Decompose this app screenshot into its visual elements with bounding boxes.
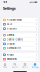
button[interactable]: Settings bbox=[30, 61, 40, 70]
button[interactable]: Wi-Fi bbox=[2, 22, 38, 27]
button[interactable]: Search bbox=[10, 61, 20, 70]
staticText: General bbox=[7, 34, 15, 37]
button[interactable]: Privacy bbox=[2, 53, 38, 57]
button[interactable]: Airplane Mode bbox=[2, 18, 38, 22]
staticText: Wi-Fi bbox=[7, 23, 13, 26]
button[interactable]: Library bbox=[20, 61, 30, 70]
staticText: Search bbox=[12, 66, 18, 68]
staticText: Settings bbox=[3, 6, 16, 11]
staticText: Bluetooth bbox=[7, 27, 17, 30]
button[interactable]: Control Centre bbox=[2, 37, 38, 42]
staticText: Passwords bbox=[7, 58, 17, 60]
staticText: 9:41 bbox=[3, 1, 7, 4]
staticText: Accessibility bbox=[7, 47, 21, 50]
staticText: Library bbox=[22, 66, 28, 68]
button[interactable]: Display bbox=[2, 42, 38, 46]
button[interactable]: Home bbox=[0, 61, 10, 70]
button[interactable]: Passwords bbox=[2, 57, 38, 61]
staticText: Privacy bbox=[7, 53, 14, 56]
staticText: Display bbox=[7, 42, 15, 45]
button[interactable]: Accessibility bbox=[2, 46, 38, 50]
staticText: Settings bbox=[31, 66, 38, 68]
button[interactable]: General bbox=[2, 33, 38, 37]
staticText: Airplane Mode bbox=[7, 18, 22, 21]
button[interactable]: Bluetooth bbox=[2, 27, 38, 31]
staticText: Home bbox=[3, 66, 7, 68]
staticText: Control Centre bbox=[7, 38, 23, 41]
